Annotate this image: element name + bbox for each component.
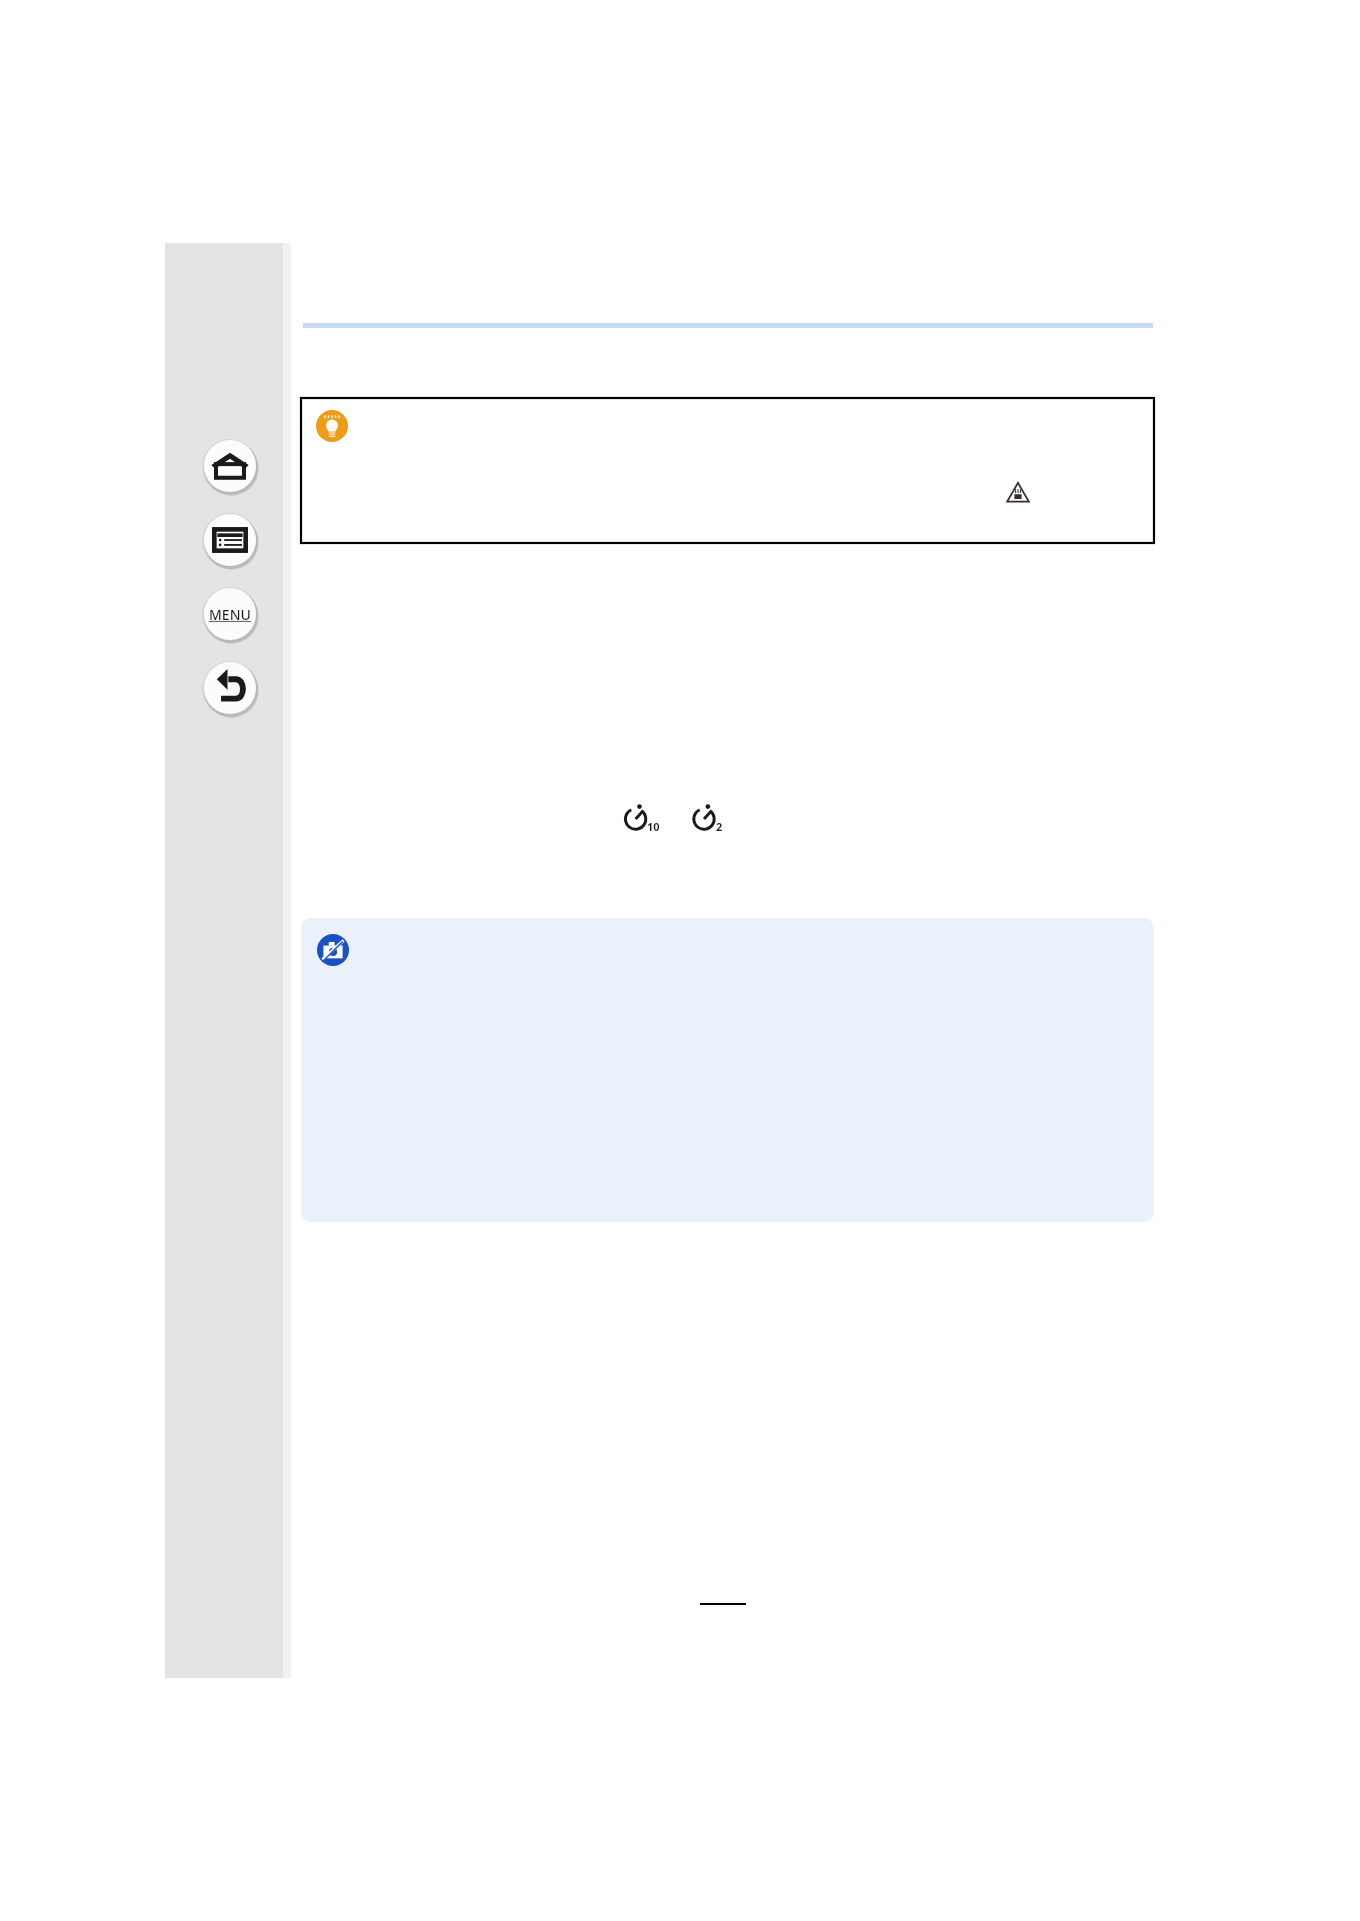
button[interactable]: Display / info bbox=[202, 512, 258, 568]
staticText: 10 bbox=[647, 819, 660, 834]
button[interactable]: Home bbox=[202, 438, 258, 494]
staticText: 2 bbox=[716, 819, 723, 834]
button[interactable]: Menu bbox=[202, 586, 258, 642]
staticText: MENU bbox=[209, 605, 251, 624]
button[interactable]: Back bbox=[202, 660, 258, 716]
